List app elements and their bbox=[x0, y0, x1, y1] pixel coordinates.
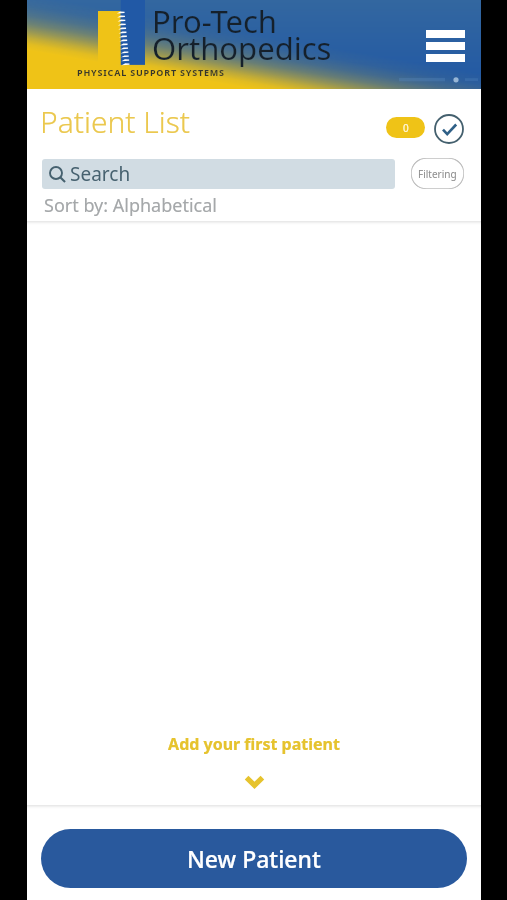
staticText: Filtering bbox=[418, 167, 457, 181]
staticText: New Patient bbox=[187, 843, 321, 874]
button[interactable]: Patient List bbox=[40, 101, 190, 142]
button[interactable]: Search bbox=[42, 159, 395, 189]
button[interactable]: New Patient bbox=[41, 829, 467, 888]
staticText: PHYSICAL SUPPORT SYSTEMS bbox=[77, 66, 225, 78]
staticText: Sort by: Alphabetical bbox=[44, 193, 217, 218]
button[interactable]: Filtering bbox=[411, 158, 464, 189]
staticText: Orthopedics bbox=[152, 27, 332, 69]
staticText: Pro-Tech bbox=[152, 0, 278, 42]
button[interactable]: Menu bbox=[426, 30, 465, 62]
button[interactable]: 0 bbox=[386, 117, 425, 138]
staticText: 0 bbox=[403, 121, 409, 135]
staticText: Add your first patient bbox=[27, 733, 481, 755]
button[interactable]: Select all bbox=[434, 114, 464, 144]
staticText: Search bbox=[70, 161, 131, 187]
